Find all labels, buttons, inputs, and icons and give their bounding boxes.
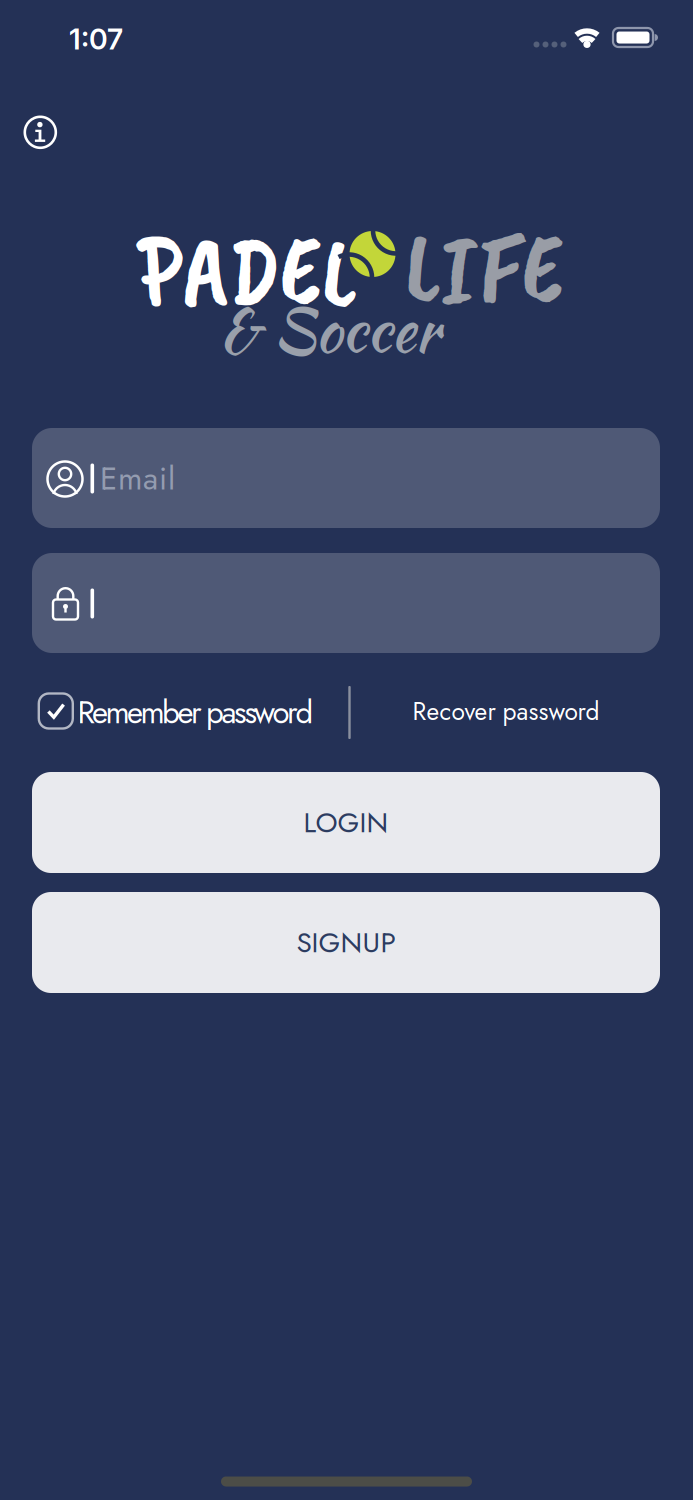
staticText: Remember password [77,690,313,735]
staticText: 1:07 [69,22,123,56]
button[interactable]: Recover password [376,676,636,746]
staticText: LIFE [404,206,563,330]
button[interactable]: Password [32,553,660,653]
button[interactable]: Info [18,110,62,154]
staticText: Email [100,456,175,501]
button[interactable]: SIGNUP [32,892,660,993]
staticText: & Soccer [219,286,439,374]
staticText: PADEL [136,208,357,332]
staticText: Recover password [412,694,599,729]
button[interactable]: Email [32,428,660,528]
button[interactable]: Remember password [24,676,324,746]
staticText: LOGIN [303,802,388,843]
button[interactable]: LOGIN [32,772,660,873]
staticText: SIGNUP [296,922,395,963]
